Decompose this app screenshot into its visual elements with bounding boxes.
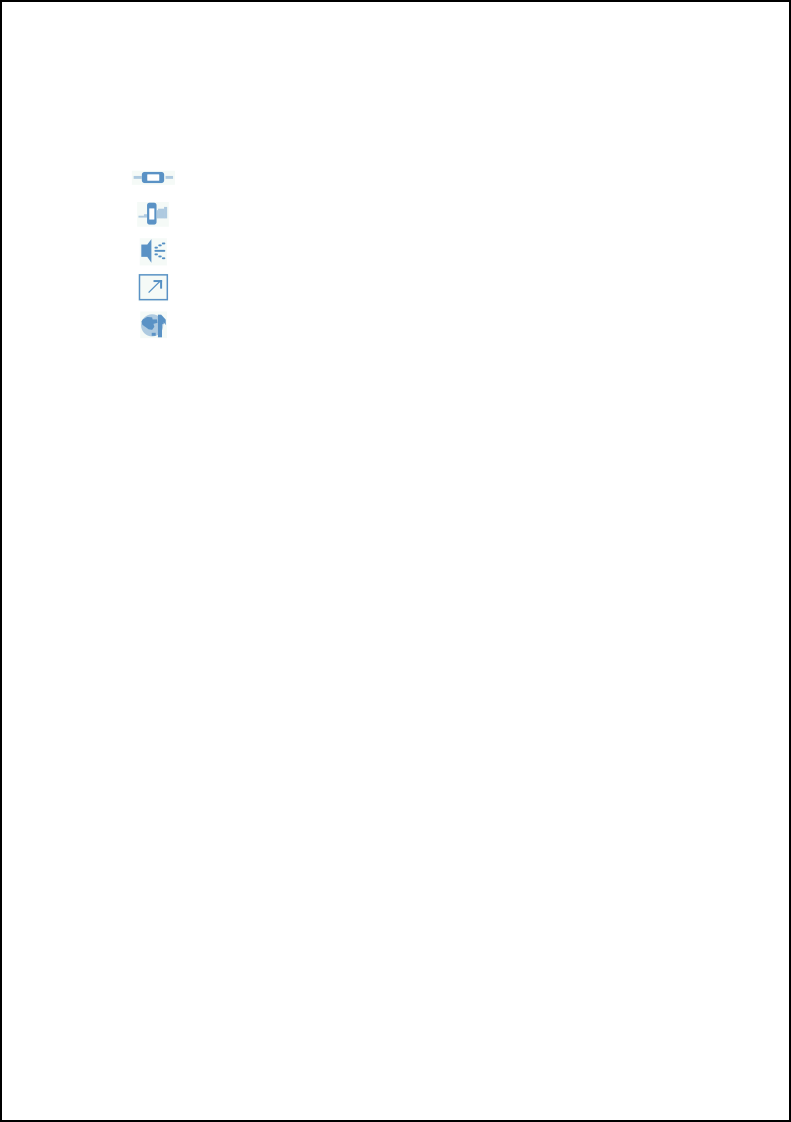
- button[interactable]: Language: [140, 311, 167, 338]
- button[interactable]: Sound: [140, 238, 167, 265]
- button[interactable]: Open full screen: [138, 274, 168, 301]
- button[interactable]: Rotate to landscape: [132, 171, 175, 185]
- button[interactable]: Rotate to portrait: [137, 202, 169, 227]
